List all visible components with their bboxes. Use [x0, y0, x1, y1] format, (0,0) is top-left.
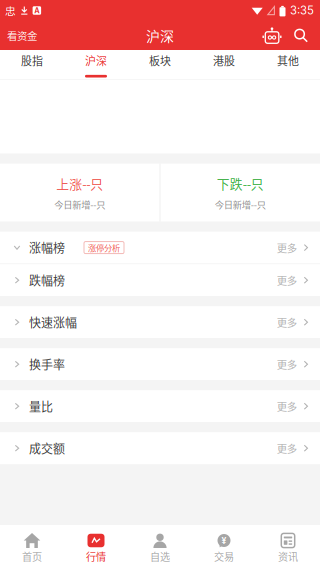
staticText: 涨幅榜: [29, 239, 65, 256]
button[interactable]: 换手率: [0, 348, 320, 380]
staticText: 涨停分析: [88, 242, 120, 254]
staticText: 沪深: [85, 53, 107, 68]
staticText: 快速涨幅: [29, 313, 77, 331]
staticText: 成交额: [29, 439, 65, 457]
staticText: 更多: [277, 273, 297, 288]
staticText: 今日新增--只: [54, 198, 105, 211]
staticText: 更多: [277, 357, 297, 372]
staticText: 更多: [277, 240, 297, 255]
staticText: 资讯: [278, 549, 298, 564]
staticText: 行情: [86, 549, 106, 564]
button[interactable]: 量比: [0, 390, 320, 422]
staticText: 其他: [277, 53, 299, 68]
staticText: 换手率: [29, 355, 65, 373]
button[interactable]: 资讯: [256, 525, 320, 568]
staticText: 下跌--只: [217, 174, 264, 193]
button[interactable]: 跌幅榜: [0, 264, 320, 296]
button[interactable]: 自选: [128, 525, 192, 568]
staticText: 股指: [21, 53, 43, 68]
staticText: 今日新增--只: [215, 198, 266, 211]
button[interactable]: 快速涨幅: [0, 306, 320, 338]
staticText: 沪深: [146, 25, 174, 46]
staticText: 量比: [29, 397, 53, 415]
button[interactable]: 首页: [0, 525, 64, 568]
button[interactable]: 板块: [128, 50, 192, 79]
button[interactable]: 行情: [64, 525, 128, 568]
staticText: ¥: [221, 536, 226, 546]
button[interactable]: 搜索: [287, 21, 315, 50]
button[interactable]: ¥: [192, 525, 256, 568]
staticText: 更多: [277, 315, 297, 330]
button[interactable]: 成交额: [0, 432, 320, 464]
staticText: 更多: [277, 441, 297, 456]
staticText: 上涨--只: [56, 174, 103, 193]
button[interactable]: 股指: [0, 50, 64, 79]
staticText: 首页: [22, 549, 42, 564]
button[interactable]: 涨幅榜: [0, 232, 320, 264]
staticText: 自选: [150, 549, 170, 564]
staticText: A: [34, 6, 39, 15]
staticText: 跌幅榜: [29, 271, 65, 289]
staticText: 看资金: [7, 28, 37, 43]
staticText: 港股: [213, 53, 235, 68]
button[interactable]: 沪深: [64, 50, 128, 79]
staticText: 忠: [5, 3, 16, 18]
button[interactable]: 看资金: [0, 21, 44, 50]
button[interactable]: 其他: [256, 50, 320, 79]
staticText: 3:35: [290, 4, 314, 17]
staticText: 交易: [214, 549, 234, 564]
staticText: 板块: [149, 53, 171, 68]
button[interactable]: 港股: [192, 50, 256, 79]
button[interactable]: 智能助手: [257, 21, 287, 50]
staticText: 更多: [277, 399, 297, 414]
